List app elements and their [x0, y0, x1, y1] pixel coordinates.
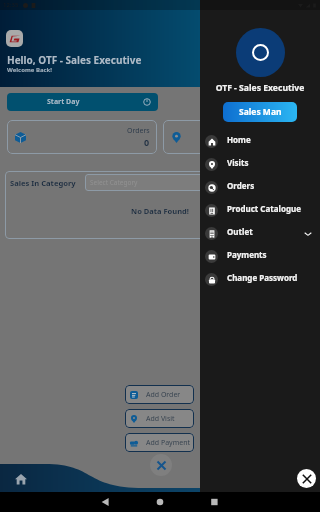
staticText: Outlet [227, 226, 253, 237]
staticText: Welcome Back! [7, 66, 52, 74]
staticText: Product Catalogue [227, 203, 301, 214]
button[interactable]: Outlet [200, 222, 320, 245]
staticText: Add Order [146, 390, 181, 400]
button[interactable]: Add Payment [125, 433, 194, 452]
button[interactable]: Orders [7, 120, 157, 154]
button[interactable]: Orders [200, 176, 320, 199]
button[interactable]: Add Visit [125, 409, 194, 428]
staticText: Hello, OTF - Sales Executive [7, 53, 142, 67]
button[interactable]: Close drawer [297, 469, 316, 488]
button[interactable]: Home [12, 470, 30, 488]
staticText: Visits [227, 157, 249, 168]
button[interactable]: Product Catalogue [200, 199, 320, 222]
staticText: 0 [144, 136, 150, 148]
button[interactable]: Home [200, 130, 320, 153]
staticText: 12:35 [3, 1, 19, 9]
staticText: Start Day [47, 97, 80, 107]
staticText: Payments [227, 249, 267, 260]
staticText: Sales Man [239, 106, 282, 118]
staticText: No Data Found! [5, 206, 315, 216]
button[interactable]: Change Password [200, 268, 320, 291]
staticText: Orders [127, 126, 150, 136]
staticText: Add Visit [146, 414, 175, 424]
button[interactable]: Sales Man [223, 102, 297, 122]
button[interactable]: Visits [200, 153, 320, 176]
staticText: Select Category [90, 178, 138, 187]
button[interactable]: Close menu [150, 454, 172, 476]
staticText: Sales In Category [10, 178, 76, 188]
button[interactable]: Payments [200, 245, 320, 268]
button[interactable]: Select Category [85, 174, 310, 191]
staticText: OTF - Sales Executive [200, 82, 320, 94]
button[interactable]: Start Day [7, 93, 158, 111]
staticText: Home [227, 134, 251, 145]
button[interactable]: Add Order [125, 385, 194, 404]
button[interactable]: Visits [163, 120, 313, 154]
staticText: Orders [227, 180, 255, 191]
staticText: Change Password [227, 272, 298, 283]
staticText: Add Payment [146, 438, 190, 448]
